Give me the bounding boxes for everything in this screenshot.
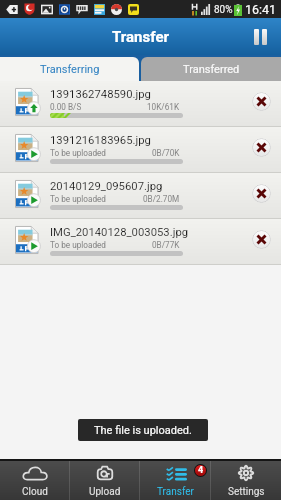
button[interactable]: Transferred xyxy=(141,57,281,81)
staticText: Settings xyxy=(228,486,265,498)
button[interactable]: Cloud xyxy=(0,461,69,500)
staticText: To be uploaded xyxy=(50,240,106,250)
button[interactable]: Cancel transfer xyxy=(252,230,271,249)
button[interactable]: Settings xyxy=(211,461,281,500)
staticText: 0B/77K xyxy=(152,240,180,250)
button[interactable]: Cancel transfer xyxy=(252,184,271,203)
staticText: Cloud xyxy=(22,486,48,498)
button[interactable]: 1391216183965.jpg xyxy=(0,127,281,173)
staticText: Transferring xyxy=(40,63,100,76)
staticText: 4 xyxy=(198,465,204,476)
staticText: To be uploaded xyxy=(50,148,106,158)
staticText: 16:41 xyxy=(245,2,277,17)
staticText: 0B/70K xyxy=(152,148,180,158)
button[interactable]: Pause xyxy=(239,18,281,55)
button[interactable]: Upload xyxy=(70,461,139,500)
staticText: 80% xyxy=(214,4,233,16)
staticText: 0B/2.70M xyxy=(143,194,180,204)
staticText: 0.00 B/S xyxy=(50,102,82,112)
staticText: To be uploaded xyxy=(50,194,106,204)
staticText: IMG_20140128_003053.jpg xyxy=(50,226,189,239)
button[interactable]: Cancel transfer xyxy=(252,138,271,157)
button[interactable]: 4 xyxy=(140,461,210,500)
button[interactable]: 20140129_095607.jpg xyxy=(0,173,281,219)
staticText: Transfer xyxy=(112,28,169,46)
staticText: Transferred xyxy=(183,63,240,76)
staticText: Transfer xyxy=(157,486,194,498)
button[interactable]: IMG_20140128_003053.jpg xyxy=(0,219,281,265)
staticText: The file is uploaded. xyxy=(94,424,192,437)
staticText: 20140129_095607.jpg xyxy=(50,180,163,193)
staticText: 10K/61K xyxy=(147,102,180,112)
button[interactable]: Transferring xyxy=(0,57,139,81)
staticText: Upload xyxy=(89,486,121,498)
staticText: 1391216183965.jpg xyxy=(50,134,151,147)
staticText: 1391362748590.jpg xyxy=(50,88,151,101)
button[interactable]: Cancel transfer xyxy=(252,92,271,111)
button[interactable]: 1391362748590.jpg xyxy=(0,81,281,127)
